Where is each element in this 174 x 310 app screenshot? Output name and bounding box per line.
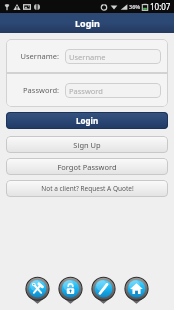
button[interactable]: Secure Login <box>56 276 85 305</box>
button[interactable]: Edit <box>89 276 118 305</box>
staticText: Username <box>69 52 106 62</box>
staticText: Password <box>69 86 103 96</box>
staticText: Login <box>76 115 99 126</box>
button[interactable]: Home <box>122 276 151 305</box>
button[interactable]: Forgot Password <box>6 158 168 175</box>
staticText: Username: <box>13 51 59 61</box>
staticText: 10:07 <box>150 1 171 12</box>
staticText: Not a client? Request A Quote! <box>41 184 134 193</box>
staticText: Login <box>75 17 100 29</box>
staticText: 36% <box>129 3 141 10</box>
button[interactable]: Not a client? Request A Quote! <box>6 180 168 197</box>
button[interactable]: Login <box>6 112 168 129</box>
button[interactable]: Sign Up <box>6 136 168 153</box>
button[interactable]: Username <box>65 49 161 64</box>
staticText: Password: <box>13 85 59 95</box>
staticText: Forgot Password <box>57 162 117 172</box>
staticText: Sign Up <box>73 140 101 150</box>
button[interactable]: Services <box>23 276 52 305</box>
button[interactable]: Password <box>65 83 161 98</box>
